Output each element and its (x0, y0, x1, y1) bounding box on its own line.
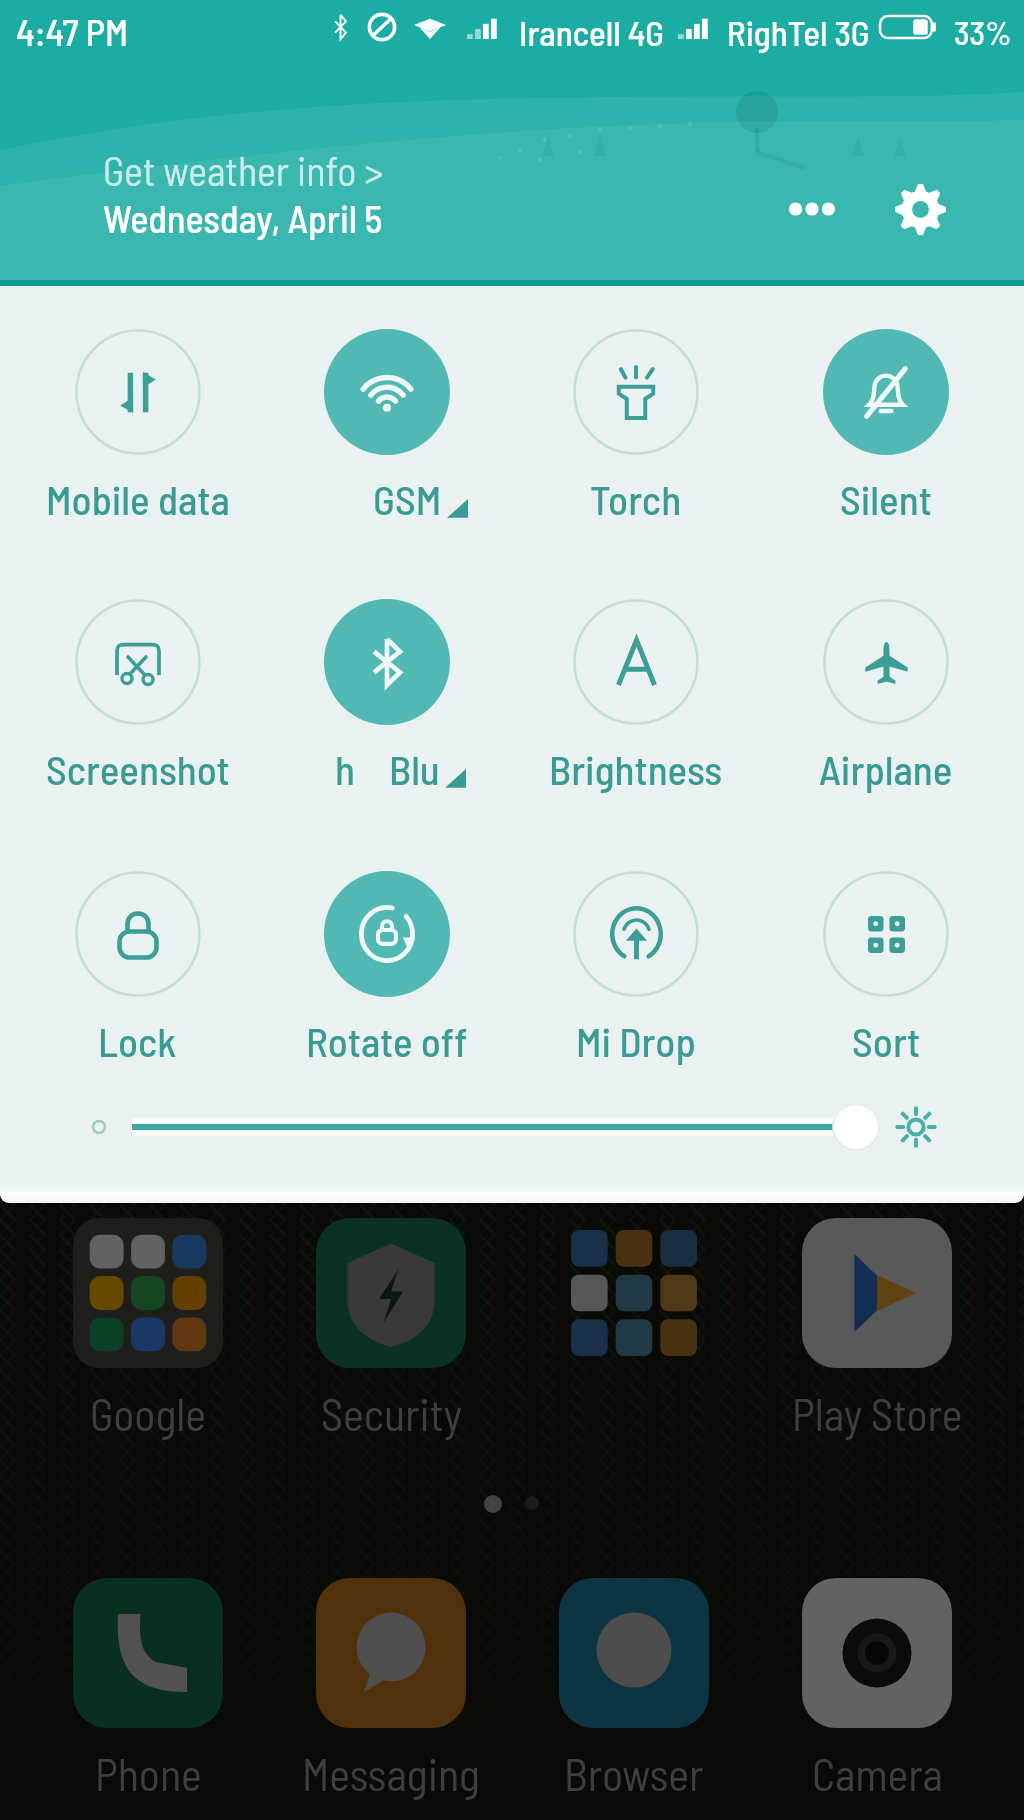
staticText: Play Store (792, 1387, 963, 1440)
staticText: Messaging (302, 1747, 480, 1800)
staticText: Silent (840, 474, 932, 523)
staticText: Camera (812, 1747, 943, 1800)
button[interactable]: More options (773, 169, 853, 249)
button[interactable]: Messaging (291, 1578, 491, 1800)
button[interactable]: Mi Drop (511, 871, 761, 1065)
button[interactable]: Torch (511, 329, 761, 523)
button[interactable] (534, 1218, 734, 1440)
button[interactable]: h (262, 599, 511, 793)
staticText: Screenshot (46, 744, 230, 793)
staticText: Get weather info > (103, 146, 384, 194)
button[interactable]: Mobile data (13, 329, 262, 523)
button[interactable]: Screenshot (13, 599, 262, 793)
button[interactable]: Settings (880, 169, 960, 249)
staticText: Airplane (819, 744, 953, 793)
staticText: 4:47 PM (16, 9, 129, 53)
staticText: 33% (954, 12, 1012, 52)
button[interactable]: Rotate off (262, 871, 511, 1065)
staticText: Wednesday, April 5 (103, 195, 383, 241)
button[interactable]: Google (48, 1218, 248, 1440)
button[interactable]: Browser (534, 1578, 734, 1800)
button[interactable]: Camera (777, 1578, 977, 1800)
button[interactable]: Lock (13, 871, 262, 1065)
staticText: Mobile data (46, 474, 230, 523)
staticText: Browser (564, 1747, 704, 1800)
button[interactable]: Sort (761, 871, 1011, 1065)
staticText: Rotate off (306, 1016, 468, 1065)
button[interactable]: Phone (48, 1578, 248, 1800)
button[interactable]: Play Store (777, 1218, 977, 1440)
staticText: Irancell 4G (519, 11, 665, 53)
staticText: Blu (389, 744, 440, 793)
staticText: Torch (590, 474, 682, 523)
button[interactable]: Security (291, 1218, 491, 1440)
staticText: Google (90, 1387, 206, 1440)
staticText: Phone (95, 1747, 202, 1800)
button[interactable]: Airplane (761, 599, 1011, 793)
staticText: Brightness (549, 744, 723, 793)
button[interactable]: Silent (761, 329, 1011, 523)
staticText: RighTel 3G (727, 11, 870, 53)
button[interactable]: GSM (262, 329, 511, 523)
staticText: Security (321, 1387, 462, 1440)
button[interactable]: Brightness (511, 599, 761, 793)
staticText: Lock (98, 1016, 177, 1065)
staticText: GSM (373, 474, 442, 523)
staticText: Mi Drop (576, 1016, 696, 1065)
staticText: h (335, 744, 355, 793)
button[interactable]: Get weather info > (103, 146, 384, 241)
staticText: Sort (852, 1016, 921, 1065)
